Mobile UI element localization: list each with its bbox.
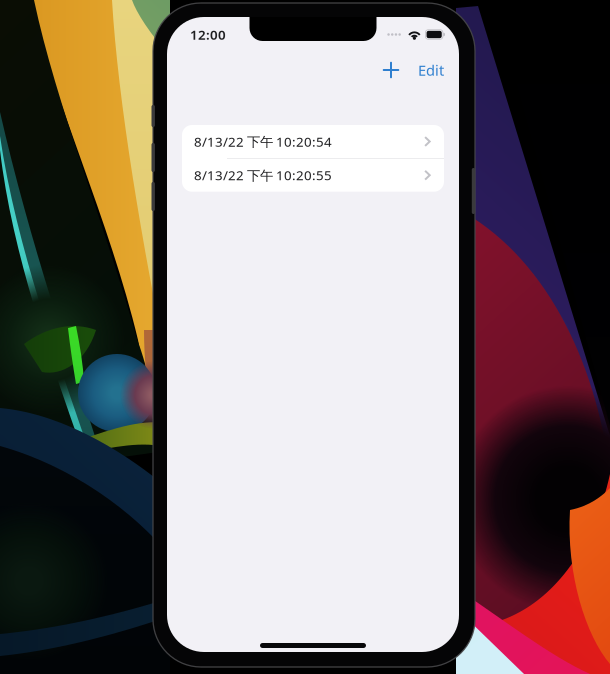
button[interactable]: Edit [418,52,444,88]
button[interactable]: 8/13/22 下午 10:20:55 [182,159,444,192]
button[interactable]: 8/13/22 下午 10:20:54 [182,125,444,158]
button[interactable]: Add Item [375,52,407,88]
staticText: 8/13/22 下午 10:20:54 [194,133,332,150]
staticText: 8/13/22 下午 10:20:55 [194,166,332,184]
staticText: 12:00 [190,26,226,43]
staticText: Edit [418,60,444,80]
